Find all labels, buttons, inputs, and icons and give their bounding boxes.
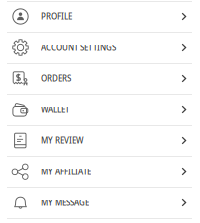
staticText: PROFILE xyxy=(41,11,72,22)
button[interactable]: MY AFFILIATE xyxy=(0,156,200,187)
staticText: WALLET xyxy=(41,104,69,115)
staticText: MY AFFILIATE xyxy=(41,166,91,177)
button[interactable]: ACCOUNT SETTINGS xyxy=(0,32,200,63)
staticText: MY REVIEW xyxy=(41,135,84,146)
staticText: ACCOUNT SETTINGS xyxy=(41,42,116,53)
button[interactable]: WALLET xyxy=(0,94,200,125)
button[interactable]: MY REVIEW xyxy=(0,125,200,156)
button[interactable]: PROFILE xyxy=(0,1,200,32)
button[interactable]: ORDERS xyxy=(0,63,200,94)
staticText: MY MESSAGE xyxy=(41,197,89,208)
button[interactable]: MY MESSAGE xyxy=(0,187,200,218)
staticText: ORDERS xyxy=(41,73,71,84)
